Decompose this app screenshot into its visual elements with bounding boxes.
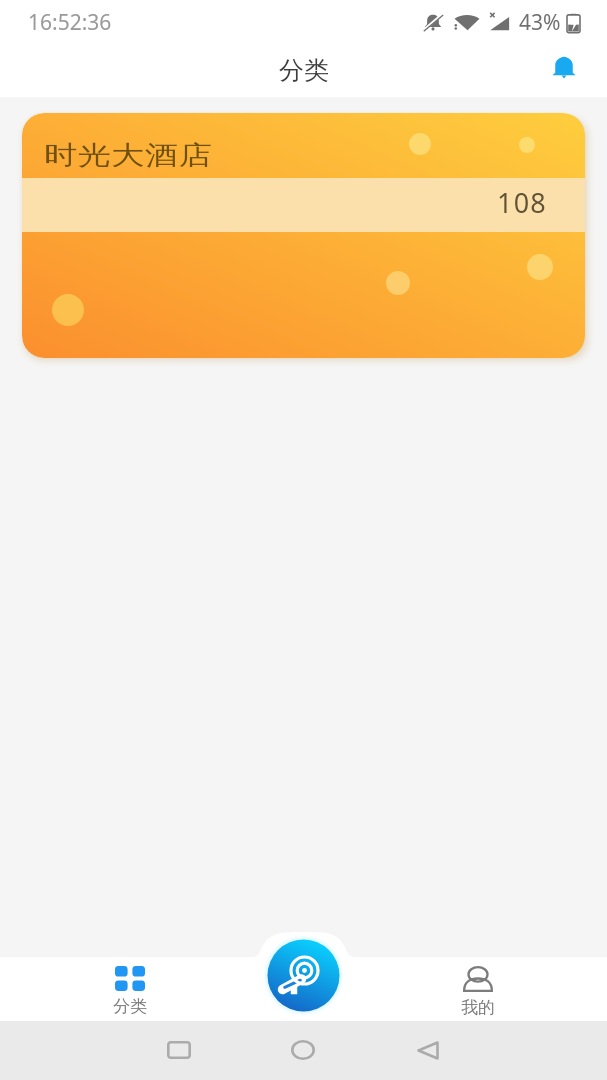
staticText: 108 xyxy=(497,184,547,221)
button[interactable]: 我的 xyxy=(442,966,514,1022)
staticText: 16:52:36 xyxy=(28,8,112,37)
staticText: 分类 xyxy=(113,996,147,1017)
button[interactable]: Recent apps xyxy=(155,1026,203,1074)
staticText: 43% xyxy=(519,8,561,37)
button[interactable]: Unlock xyxy=(263,935,344,1016)
button[interactable]: Home xyxy=(279,1026,327,1074)
button[interactable]: 时光大酒店 xyxy=(22,113,585,358)
button[interactable]: 分类 xyxy=(94,966,166,1022)
button[interactable]: Back xyxy=(404,1026,452,1074)
button[interactable]: Notifications xyxy=(540,43,588,91)
staticText: 分类 xyxy=(279,55,329,86)
staticText: 时光大酒店 xyxy=(44,139,213,172)
staticText: 我的 xyxy=(461,997,495,1018)
